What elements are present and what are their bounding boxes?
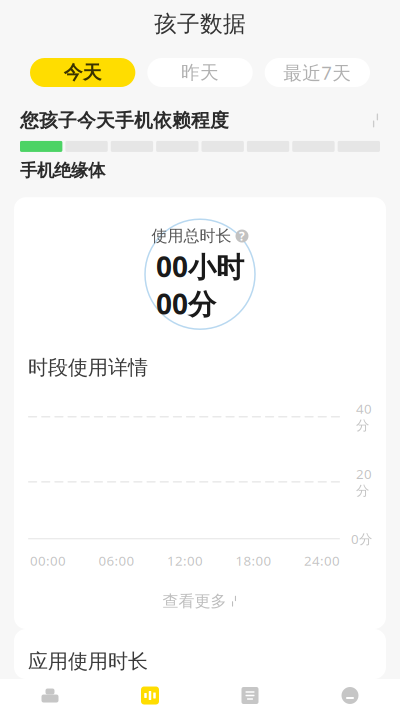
staticText: 今天 bbox=[64, 61, 102, 84]
staticText: 00小时00分 bbox=[156, 248, 244, 322]
staticText: ? bbox=[239, 228, 245, 244]
button[interactable]: 今天 bbox=[30, 58, 135, 87]
staticText: 00:00 bbox=[30, 552, 66, 569]
staticText: 您孩子今天手机依赖程度 bbox=[20, 109, 229, 132]
staticText: 12:00 bbox=[167, 552, 203, 569]
staticText: 40分 bbox=[356, 400, 372, 434]
staticText: 应用使用时长 bbox=[28, 649, 148, 674]
staticText: 查看更多 bbox=[162, 591, 226, 611]
button[interactable]: 昨天 bbox=[147, 58, 253, 87]
button[interactable]: 最近7天 bbox=[265, 58, 370, 87]
staticText: 18:00 bbox=[235, 552, 271, 569]
staticText: 06:00 bbox=[98, 552, 134, 569]
button[interactable]: 查看更多 bbox=[14, 579, 386, 623]
button[interactable]: 数据 bbox=[100, 679, 200, 711]
staticText: 最近7天 bbox=[283, 60, 351, 85]
button[interactable]: 您孩子今天手机依赖程度 bbox=[0, 109, 400, 181]
button[interactable]: 自律计划 bbox=[200, 679, 300, 711]
staticText: 手机绝缘体 bbox=[20, 160, 105, 181]
staticText: 24:00 bbox=[304, 552, 340, 569]
button[interactable]: 关爱 bbox=[0, 679, 100, 711]
staticText: 时段使用详情 bbox=[28, 355, 148, 380]
button[interactable]: 个人 bbox=[300, 679, 400, 711]
staticText: 孩子数据 bbox=[154, 10, 246, 38]
staticText: 20分 bbox=[356, 465, 372, 499]
staticText: 使用总时长 bbox=[151, 226, 231, 246]
staticText: 0分 bbox=[351, 530, 372, 548]
staticText: 昨天 bbox=[181, 61, 219, 84]
